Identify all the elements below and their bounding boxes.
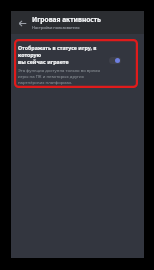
staticText: Отображать в статусе игру, в которую вы …: [18, 44, 104, 65]
staticText: Игровая активность: [32, 15, 101, 24]
staticText: Эта функция доступна только во время игр…: [18, 67, 104, 85]
button[interactable]: Переключатель игровой активности: [109, 57, 121, 64]
button[interactable]: Назад: [14, 15, 30, 31]
staticText: Настройки пользователя: [32, 25, 80, 30]
button[interactable]: Отображать в статусе игру, в которую вы …: [14, 39, 138, 88]
